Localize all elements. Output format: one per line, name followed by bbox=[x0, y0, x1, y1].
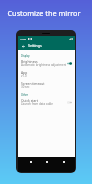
staticText: Launch from data cable bbox=[21, 102, 53, 106]
button[interactable]: App bbox=[18, 68, 75, 79]
staticText: v1.0 bbox=[21, 74, 27, 78]
staticText: Automatic brightness adjustment bbox=[21, 63, 66, 67]
staticText: Screen timeout bbox=[21, 81, 45, 85]
staticText: Quick start bbox=[21, 98, 38, 102]
staticText: Brightness bbox=[21, 59, 38, 63]
button[interactable]: Back bbox=[20, 43, 26, 49]
button[interactable]: Screen timeout bbox=[18, 79, 75, 90]
button[interactable]: Back bbox=[26, 157, 35, 166]
staticText: Other bbox=[21, 93, 28, 96]
button[interactable]: Quick start bbox=[18, 96, 75, 107]
staticText: Settings bbox=[28, 43, 42, 48]
staticText: Display bbox=[21, 54, 30, 57]
button[interactable]: Toggle Quick start bbox=[66, 99, 73, 105]
staticText: 10:00 bbox=[20, 37, 27, 40]
staticText: 30 sec bbox=[21, 85, 30, 89]
staticText: Customize the mirror bbox=[0, 8, 88, 18]
button[interactable]: Brightness bbox=[18, 57, 75, 68]
staticText: App bbox=[21, 70, 28, 74]
button[interactable]: Toggle Brightness bbox=[66, 60, 73, 66]
button[interactable]: Recent apps bbox=[59, 157, 68, 166]
button[interactable]: Home bbox=[42, 157, 51, 166]
